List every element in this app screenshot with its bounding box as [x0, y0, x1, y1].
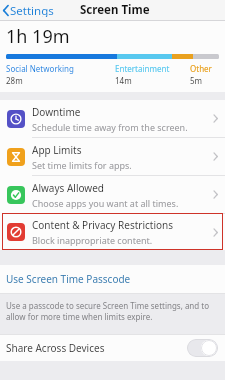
- staticText: 14m: [115, 75, 132, 86]
- staticText: Choose apps you want at all times.: [32, 197, 179, 209]
- staticText: Schedule time away from the screen.: [32, 121, 188, 133]
- staticText: Social Networking: [6, 63, 74, 74]
- button[interactable]: Always Allowed: [0, 176, 225, 214]
- staticText: Set time limits for apps.: [32, 159, 132, 171]
- staticText: Always Allowed: [32, 181, 104, 195]
- staticText: App Limits: [32, 143, 82, 157]
- button[interactable]: Share Across Devices toggle: [187, 339, 218, 357]
- staticText: Downtime: [32, 105, 81, 119]
- staticText: Entertainment: [115, 63, 170, 74]
- staticText: Content & Privacy Restrictions: [32, 218, 174, 232]
- staticText: Share Across Devices: [6, 341, 187, 355]
- staticText: Use Screen Time Passcode: [6, 272, 131, 286]
- button[interactable]: Share Across Devices: [0, 335, 225, 361]
- staticText: 1h 19m: [6, 24, 70, 49]
- button[interactable]: App Limits: [0, 138, 225, 176]
- staticText: Settings: [10, 3, 54, 17]
- staticText: 28m: [6, 75, 23, 86]
- button[interactable]: Downtime: [0, 100, 225, 138]
- staticText: Block inappropriate content.: [32, 234, 153, 246]
- button[interactable]: Content & Privacy Restrictions: [0, 214, 225, 250]
- staticText: Use a passcode to secure Screen Time set…: [6, 300, 216, 322]
- staticText: Other: [190, 63, 212, 74]
- staticText: 5m: [190, 75, 203, 86]
- button[interactable]: Use Screen Time Passcode: [0, 265, 225, 293]
- button[interactable]: Settings: [0, 0, 62, 20]
- staticText: Screen Time: [80, 2, 150, 18]
